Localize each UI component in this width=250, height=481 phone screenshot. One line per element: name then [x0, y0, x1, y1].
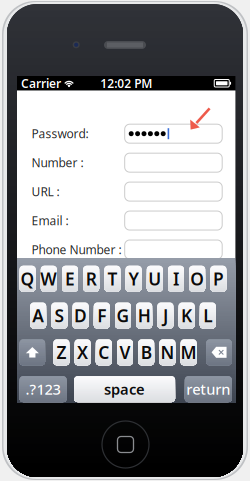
- staticText: return: [186, 379, 230, 399]
- staticText: Q: [21, 267, 35, 290]
- button[interactable]: M: [181, 339, 197, 365]
- button[interactable]: Return: [185, 376, 232, 402]
- staticText: space: [104, 379, 145, 399]
- staticText: .?123: [26, 379, 61, 399]
- button[interactable]: P: [210, 266, 226, 292]
- staticText: J: [163, 304, 168, 327]
- staticText: Number :: [32, 155, 84, 171]
- staticText: R: [86, 267, 97, 290]
- button[interactable]: T: [104, 266, 120, 292]
- staticText: I: [173, 267, 179, 290]
- button[interactable]: E: [62, 266, 78, 292]
- staticText: U: [148, 267, 161, 290]
- button[interactable]: B: [138, 339, 154, 365]
- button[interactable]: space: [74, 376, 175, 402]
- button[interactable]: V: [117, 339, 133, 365]
- staticText: Password:: [32, 126, 89, 142]
- button[interactable]: C: [96, 339, 112, 365]
- staticText: V: [119, 341, 130, 364]
- button[interactable]: Q: [20, 266, 36, 292]
- staticText: P: [213, 267, 224, 290]
- button[interactable]: J: [157, 302, 173, 328]
- button[interactable]: W: [41, 266, 57, 292]
- staticText: Carrier: [21, 75, 61, 91]
- staticText: Email :: [32, 213, 69, 228]
- staticText: B: [141, 341, 152, 364]
- button[interactable]: G: [115, 302, 131, 328]
- button[interactable]: D: [73, 302, 89, 328]
- button[interactable]: F: [94, 302, 110, 328]
- staticText: F: [97, 304, 106, 327]
- staticText: W: [40, 267, 57, 290]
- staticText: C: [98, 341, 109, 364]
- button[interactable]: R: [83, 266, 99, 292]
- button[interactable]: Shift: [20, 339, 45, 365]
- button[interactable]: Numbers: [20, 376, 67, 402]
- staticText: Z: [56, 341, 66, 364]
- staticText: URL :: [32, 184, 60, 199]
- staticText: Y: [129, 267, 139, 290]
- staticText: E: [65, 267, 75, 290]
- staticText: H: [138, 304, 151, 327]
- button[interactable]: S: [51, 302, 67, 328]
- staticText: G: [116, 304, 129, 327]
- button[interactable]: A: [30, 302, 46, 328]
- button[interactable]: U: [147, 266, 163, 292]
- button[interactable]: L: [200, 302, 216, 328]
- staticText: T: [107, 267, 117, 290]
- staticText: L: [203, 304, 212, 327]
- staticText: X: [77, 341, 88, 364]
- button[interactable]: I: [168, 266, 184, 292]
- staticText: N: [160, 341, 174, 364]
- button[interactable]: K: [179, 302, 195, 328]
- button[interactable]: N: [159, 339, 175, 365]
- button[interactable]: H: [136, 302, 152, 328]
- button[interactable]: Z: [53, 339, 69, 365]
- staticText: 12:02 PM: [100, 75, 152, 91]
- button[interactable]: Y: [126, 266, 142, 292]
- staticText: M: [181, 341, 197, 364]
- button[interactable]: Delete: [206, 339, 232, 365]
- staticText: K: [181, 304, 192, 327]
- staticText: S: [54, 304, 64, 327]
- staticText: Phone Number :: [32, 241, 122, 257]
- button[interactable]: O: [189, 266, 205, 292]
- staticText: D: [74, 304, 87, 327]
- staticText: A: [32, 304, 44, 327]
- button[interactable]: X: [75, 339, 91, 365]
- staticText: O: [190, 267, 204, 290]
